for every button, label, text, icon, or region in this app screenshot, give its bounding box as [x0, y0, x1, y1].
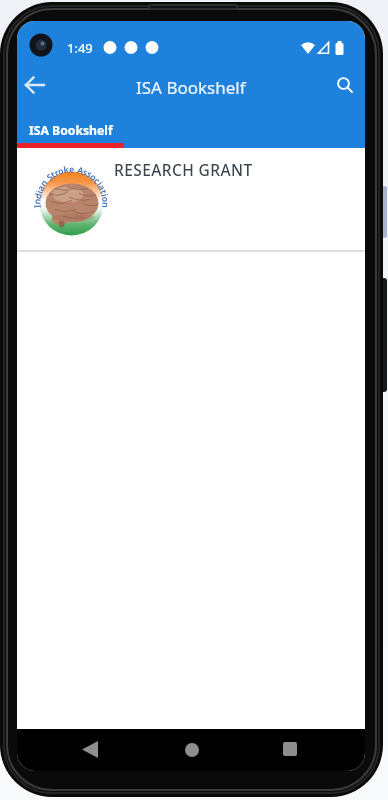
button[interactable] [75, 734, 105, 764]
button[interactable]: ISA Bookshelf [17, 112, 124, 148]
button[interactable] [19, 69, 51, 101]
staticText: ISA Bookshelf [136, 76, 246, 99]
button[interactable] [177, 735, 207, 765]
button[interactable] [329, 69, 359, 101]
staticText: RESEARCH GRANT [114, 159, 253, 180]
button[interactable] [275, 734, 305, 764]
staticText: ISA Bookshelf [29, 122, 113, 139]
staticText: 1:49 [67, 39, 93, 57]
button[interactable]: RESEARCH GRANT [17, 148, 365, 250]
